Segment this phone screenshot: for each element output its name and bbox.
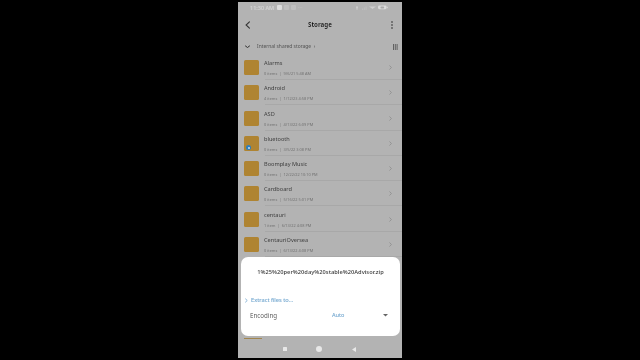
button[interactable]: bluetooth (238, 131, 402, 156)
button[interactable]: ASD (238, 106, 402, 131)
staticText: Storage (308, 20, 332, 28)
button[interactable]: Alarms (238, 55, 402, 80)
staticText: Android (264, 84, 285, 92)
staticText: 0 items | 4/13/22 6:09 PM (264, 122, 314, 127)
button[interactable]: Android (238, 80, 402, 105)
staticText: 0 items | 6/13/22 4:08 PM (264, 248, 314, 253)
staticText: bluetooth (264, 135, 290, 143)
button[interactable]: Home (311, 341, 327, 357)
staticText: 4 items | 1/12/23 4:58 PM (264, 96, 314, 101)
button[interactable]: Extract files to... (244, 296, 294, 304)
button[interactable]: Encoding (241, 306, 400, 324)
button[interactable]: Back (240, 17, 256, 33)
staticText: 0 items | 5/16/22 5:01 PM (264, 197, 314, 202)
staticText: 1%25%20per%20day%20stable%20Advisor.zip (241, 268, 400, 276)
button[interactable]: Boomplay Music (238, 156, 402, 181)
staticText: CentauriOversea (264, 236, 309, 244)
staticText: Auto (332, 311, 345, 319)
button[interactable]: View options (393, 44, 398, 50)
button[interactable]: CentauriOversea (238, 232, 402, 257)
staticText: Extract files to... (251, 296, 294, 304)
staticText: 11:30 AM (250, 4, 275, 11)
staticText: centauri (264, 211, 286, 219)
button[interactable]: centauri (238, 207, 402, 232)
staticText: 0 items | 12/22/22 10:10 PM (264, 172, 318, 177)
staticText: Cardboard (264, 185, 292, 193)
staticText: 1 item | 6/13/22 4:08 PM (264, 223, 312, 228)
button[interactable]: Cardboard (238, 181, 402, 206)
staticText: ASD (264, 110, 275, 118)
button[interactable]: Recents (277, 341, 293, 357)
staticText: 0 items | 3/5/22 3:08 PM (264, 147, 311, 152)
staticText: Internal shared storage › (257, 43, 316, 50)
staticText: Encoding (250, 311, 278, 319)
staticText: 0 items | 9/6/21 5:48 AM (264, 71, 312, 76)
staticText: Boomplay Music (264, 160, 308, 168)
button[interactable]: Back (346, 341, 362, 357)
staticText: Alarms (264, 59, 283, 67)
button[interactable]: More options (384, 17, 400, 33)
